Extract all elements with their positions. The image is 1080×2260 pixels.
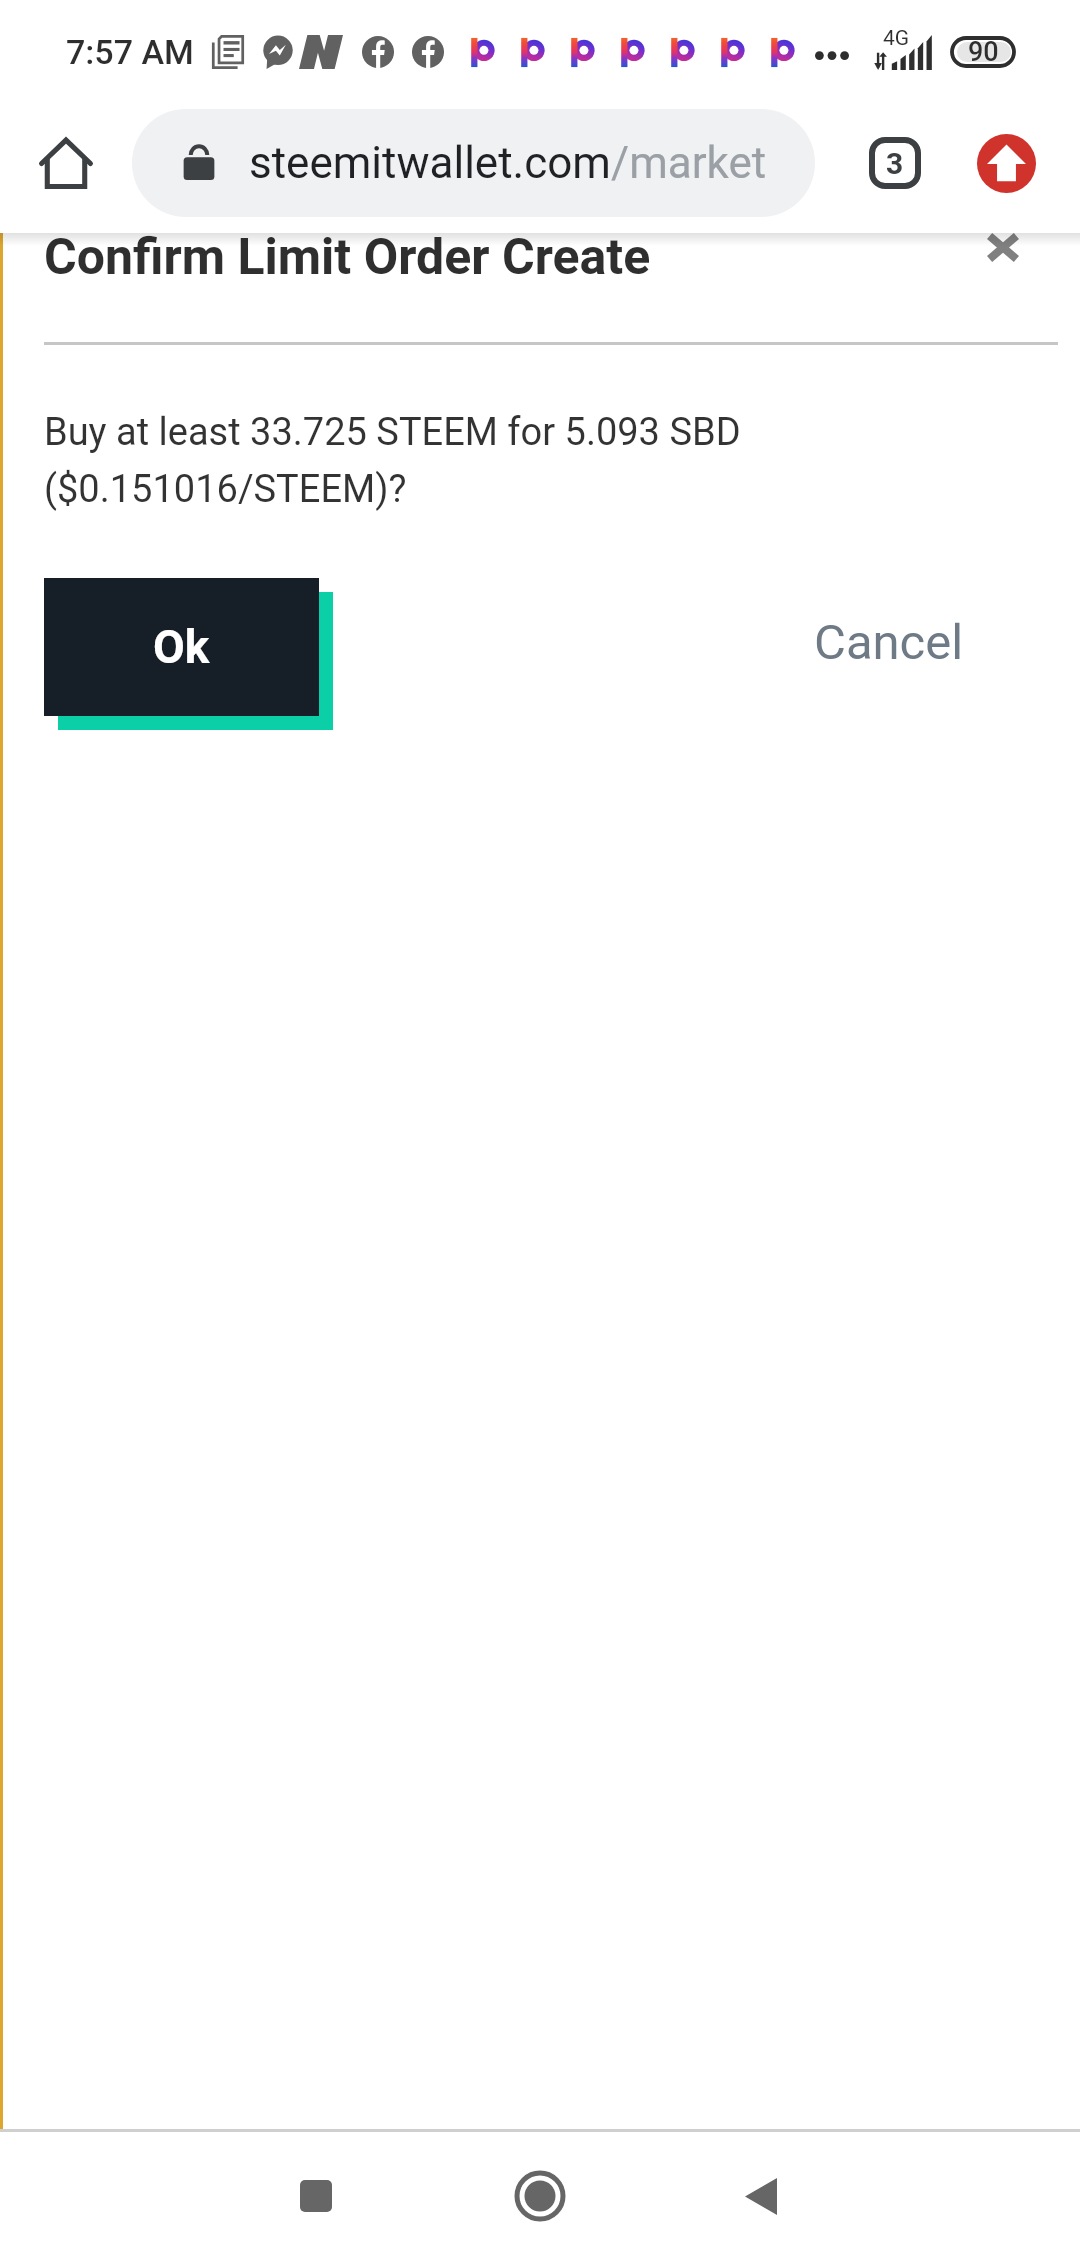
staticText: 90 <box>968 36 999 68</box>
button[interactable]: Back <box>706 2141 816 2251</box>
button[interactable]: Tabs: 3 <box>852 120 938 206</box>
staticText: 7:57 AM <box>66 32 194 72</box>
staticText: 3 <box>886 146 904 181</box>
button[interactable]: Home <box>485 2141 595 2251</box>
button[interactable]: Update <box>963 120 1049 206</box>
staticText: Cancel <box>814 614 964 671</box>
staticText: /market <box>611 137 767 189</box>
staticText: Ok <box>153 620 210 674</box>
staticText: 4G <box>883 26 910 51</box>
staticText: steemitwallet.com <box>249 137 611 189</box>
staticText: Confirm Limit Order Create <box>44 228 651 287</box>
button[interactable]: Close <box>979 223 1027 271</box>
button[interactable]: Home <box>26 123 106 203</box>
button[interactable]: steemitwallet.com <box>132 109 815 217</box>
button[interactable]: Ok <box>44 578 319 716</box>
button[interactable]: Cancel <box>814 614 964 671</box>
staticText: Buy at least 33.725 STEEM for 5.093 SBD … <box>44 410 741 511</box>
button[interactable]: Recent apps <box>261 2141 371 2251</box>
